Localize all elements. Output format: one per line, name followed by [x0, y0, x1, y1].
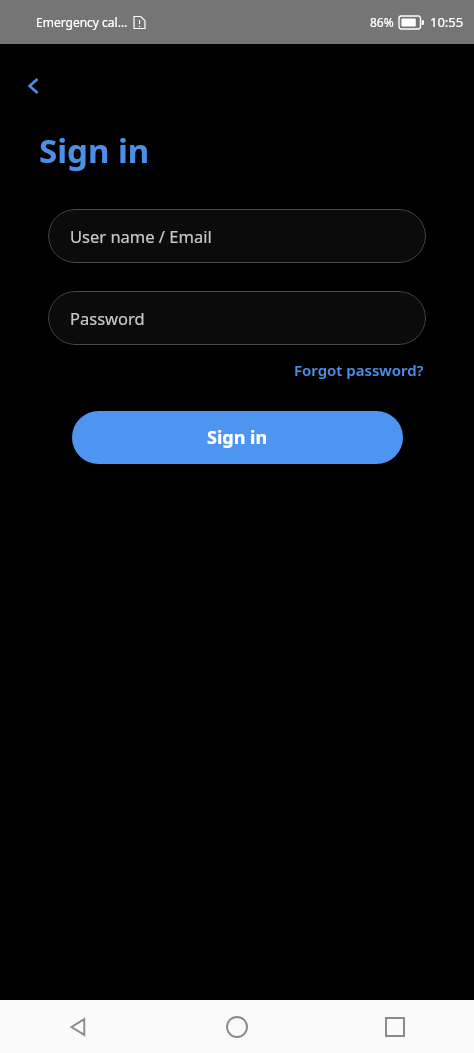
button[interactable]: Back [0, 1000, 158, 1053]
button[interactable]: Password [48, 291, 426, 345]
button[interactable]: Home [158, 1000, 316, 1053]
button[interactable]: Sign in [72, 411, 403, 464]
staticText: Sign in [207, 425, 268, 450]
staticText: 86% [370, 14, 394, 30]
staticText: Emergency cal… [36, 14, 128, 30]
button[interactable]: User name / Email [48, 209, 426, 263]
button[interactable]: Back [14, 66, 54, 106]
staticText: Sign in [39, 128, 150, 173]
staticText: 10:55 [430, 13, 464, 31]
staticText: Forgot password? [294, 360, 424, 380]
button[interactable]: Recent apps [316, 1000, 474, 1053]
button[interactable]: Forgot password? [292, 357, 426, 383]
staticText: Password [70, 307, 145, 329]
staticText: User name / Email [70, 225, 212, 247]
